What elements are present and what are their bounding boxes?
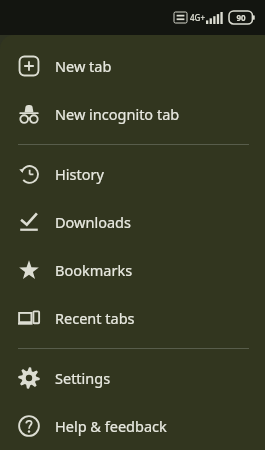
button[interactable]: Recent tabs xyxy=(0,294,265,342)
button[interactable]: Bookmarks xyxy=(0,246,265,294)
button[interactable]: Help & feedback xyxy=(0,402,265,450)
staticText: New tab xyxy=(55,56,112,76)
staticText: 4G+ xyxy=(190,12,205,23)
staticText: Recent tabs xyxy=(55,308,135,328)
staticText: Help & feedback xyxy=(55,416,167,436)
button[interactable]: Settings xyxy=(0,354,265,402)
staticText: Downloads xyxy=(55,212,131,232)
staticText: Settings xyxy=(55,368,111,388)
button[interactable]: Downloads xyxy=(0,198,265,246)
button[interactable]: History xyxy=(0,150,265,198)
button[interactable]: New incognito tab xyxy=(0,90,265,138)
staticText: Bookmarks xyxy=(55,260,133,280)
staticText: New incognito tab xyxy=(55,104,180,124)
staticText: History xyxy=(55,164,104,184)
button[interactable]: New tab xyxy=(0,42,265,90)
staticText: 90 xyxy=(236,12,246,23)
